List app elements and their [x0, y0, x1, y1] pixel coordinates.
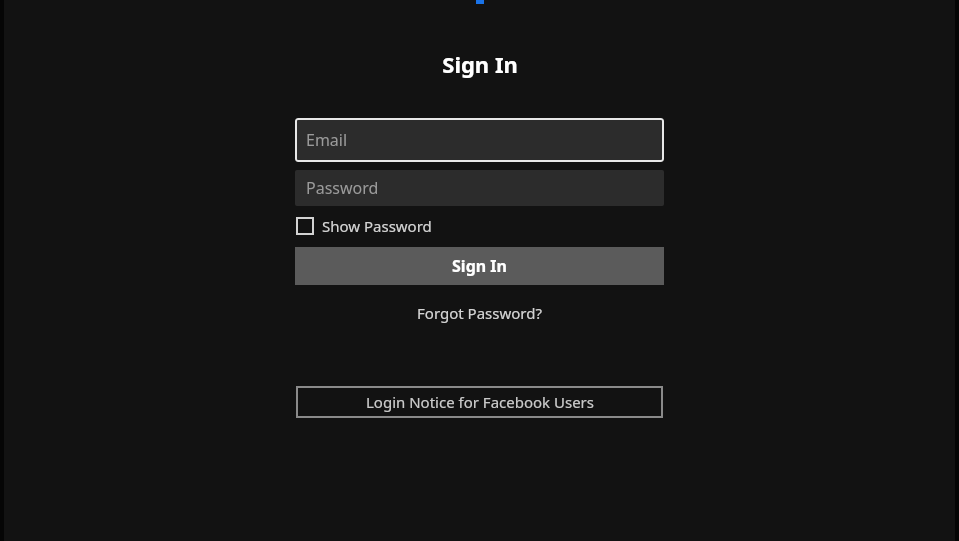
button[interactable]: Show Password — [296, 213, 438, 239]
button[interactable]: Login Notice for Facebook Users — [296, 386, 663, 418]
staticText: Login Notice for Facebook Users — [366, 392, 594, 412]
button[interactable]: Forgot Password? — [295, 299, 664, 327]
button[interactable]: Sign In — [295, 247, 664, 285]
button[interactable]: Email — [295, 118, 664, 162]
staticText: Email — [306, 129, 348, 151]
staticText: Password — [306, 177, 379, 199]
staticText: Sign In — [442, 49, 518, 78]
staticText: Forgot Password? — [417, 303, 542, 323]
button[interactable]: Password — [295, 170, 664, 206]
staticText: Show Password — [322, 216, 432, 236]
staticText: Sign In — [452, 255, 507, 277]
